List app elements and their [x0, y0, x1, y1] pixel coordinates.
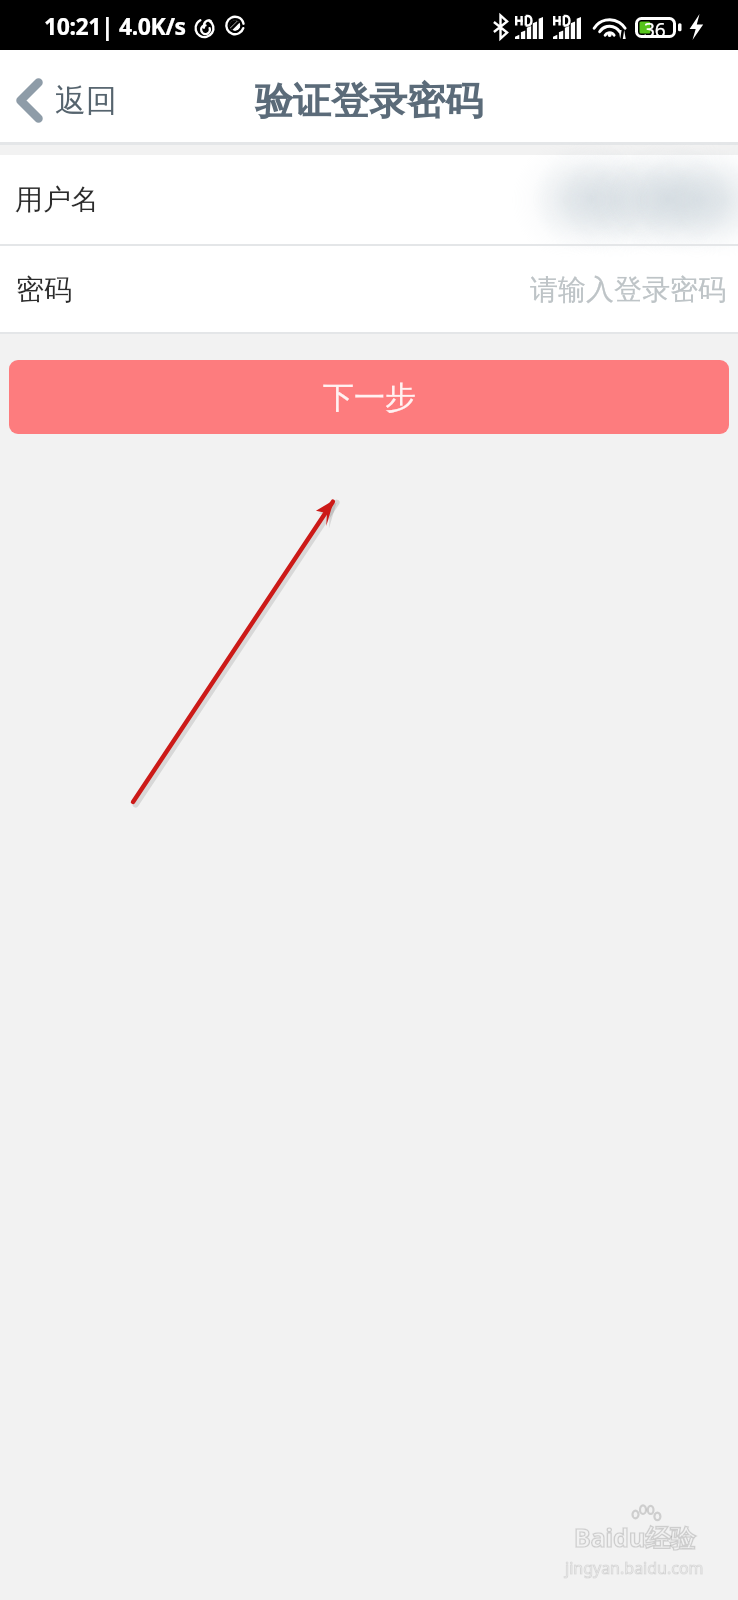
staticText: Baidu经验	[574, 1520, 696, 1554]
button[interactable]: 用户名	[0, 155, 738, 244]
staticText: 10:21| 4.0K/s	[44, 10, 186, 41]
staticText: 下一步	[323, 378, 416, 417]
staticText: 返回	[55, 81, 117, 120]
button[interactable]: 密码	[0, 246, 738, 332]
staticText: 密码	[16, 272, 72, 307]
staticText: 请输入登录密码	[530, 272, 726, 307]
staticText: jingyan.baidu.com	[565, 1557, 704, 1579]
staticText: 用户名	[15, 182, 99, 217]
staticText: 验证登录密码	[255, 77, 483, 125]
button[interactable]: 下一步	[9, 360, 729, 434]
staticText: 36	[644, 17, 666, 38]
button[interactable]: 返回 Back	[0, 65, 135, 130]
